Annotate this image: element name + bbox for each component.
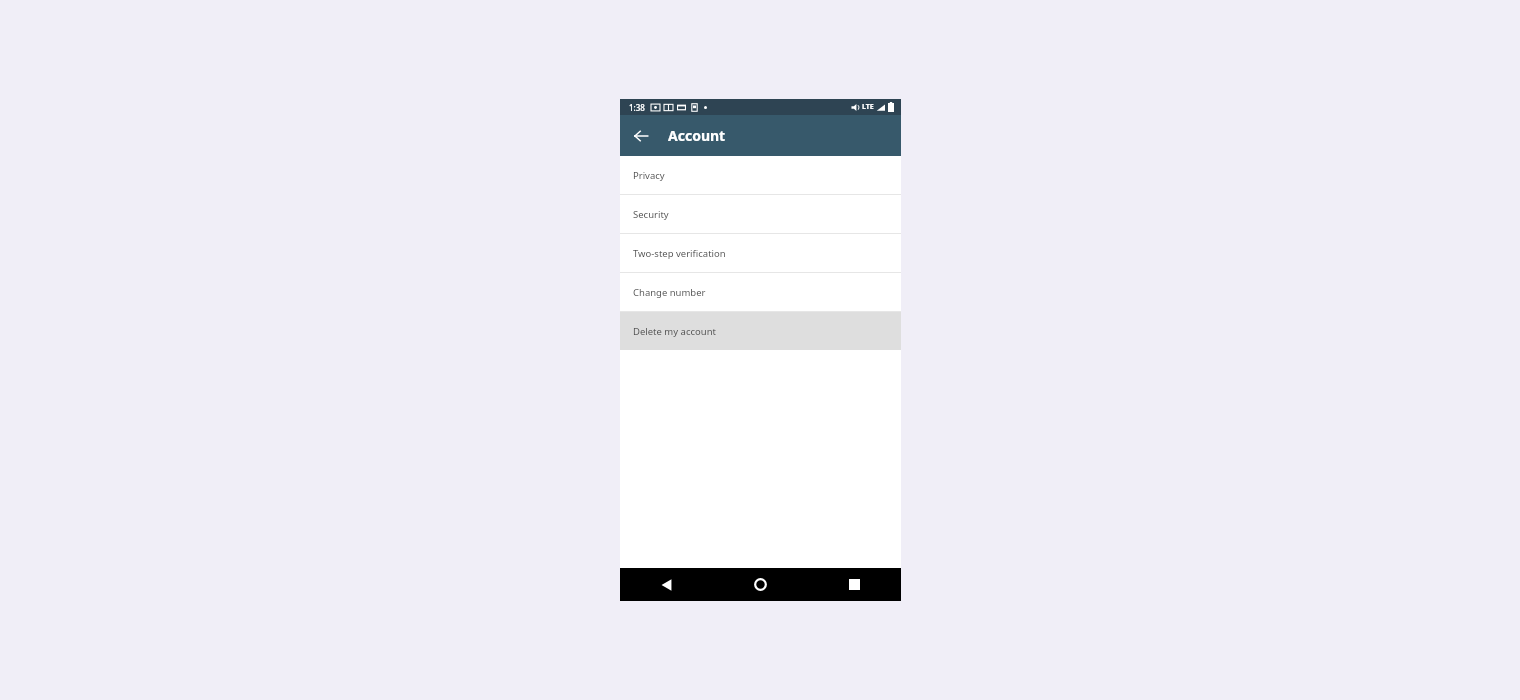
button[interactable]: Home	[713, 568, 807, 601]
button[interactable]: Change number	[620, 273, 901, 311]
staticText: 1:38	[629, 102, 645, 113]
button[interactable]: Security	[620, 195, 901, 233]
staticText: LTE	[862, 102, 874, 112]
staticText: Privacy	[633, 169, 665, 182]
staticText: Delete my account	[633, 325, 716, 338]
button[interactable]: Back	[628, 123, 654, 149]
button[interactable]: Privacy	[620, 156, 901, 194]
button[interactable]: Two-step verification	[620, 234, 901, 272]
staticText: Security	[633, 208, 669, 221]
staticText: Account	[668, 126, 726, 145]
button[interactable]: Delete my account	[620, 312, 901, 350]
staticText: Change number	[633, 286, 706, 299]
staticText: Two-step verification	[633, 247, 726, 260]
button[interactable]: Back	[620, 568, 713, 601]
button[interactable]: Recents	[807, 568, 901, 601]
